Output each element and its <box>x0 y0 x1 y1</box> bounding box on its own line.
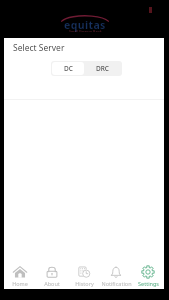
button[interactable]: Home <box>4 263 36 288</box>
button[interactable]: About <box>36 263 68 288</box>
staticText: Settings <box>138 280 159 287</box>
button[interactable]: History <box>68 263 100 288</box>
button[interactable]: Notification <box>100 263 132 288</box>
staticText: History <box>75 280 94 287</box>
staticText: Select Server <box>13 42 65 54</box>
staticText: DRC <box>96 64 109 73</box>
staticText: DC <box>64 64 73 73</box>
button[interactable]: DRC <box>84 62 121 75</box>
staticText: Home <box>12 280 28 287</box>
staticText: About <box>44 280 60 287</box>
staticText: Notification <box>101 280 132 287</box>
staticText: equitas <box>64 18 106 32</box>
button[interactable]: DC <box>52 62 84 75</box>
staticText: Small Finance Bank <box>69 29 102 32</box>
button[interactable]: Settings <box>132 263 164 288</box>
